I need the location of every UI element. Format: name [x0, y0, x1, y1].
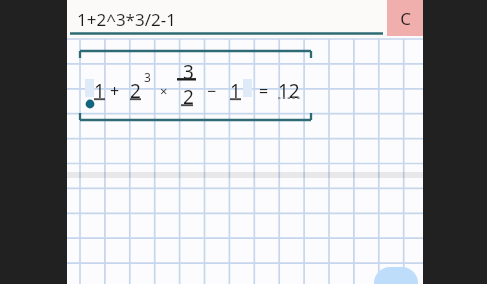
staticText: 2	[183, 84, 194, 110]
staticText: =	[259, 80, 269, 102]
staticText: 3	[183, 59, 194, 85]
staticText: −	[207, 80, 217, 102]
staticText: 2	[130, 78, 141, 104]
staticText: 1+2^3*3/2-1	[77, 8, 176, 31]
button[interactable]: Add	[374, 267, 418, 284]
staticText: 1	[230, 78, 241, 104]
staticText: C	[400, 7, 411, 30]
staticText: 3	[144, 69, 151, 85]
staticText: +	[110, 80, 120, 102]
staticText: ×	[160, 82, 168, 100]
button[interactable]: Clear	[387, 0, 423, 36]
button[interactable]: Expression input	[67, 0, 387, 38]
staticText: 1	[94, 78, 105, 104]
staticText: 12	[278, 78, 300, 104]
